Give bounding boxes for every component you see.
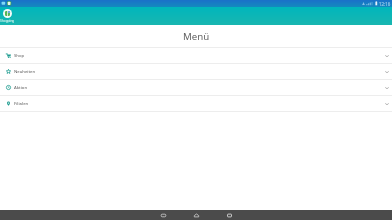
- staticText: Aktion: [14, 85, 28, 91]
- button[interactable]: Home: [180, 210, 213, 220]
- staticText: Filialen: [14, 101, 29, 107]
- button[interactable]: Aktion: [0, 80, 392, 95]
- button[interactable]: Shop: [0, 48, 392, 63]
- staticText: Menü: [183, 30, 210, 43]
- staticText: Shop: [14, 53, 25, 59]
- button[interactable]: Filialen: [0, 96, 392, 111]
- button[interactable]: Back: [147, 210, 180, 220]
- button[interactable]: Neuheiten: [0, 64, 392, 79]
- button[interactable]: Recents: [213, 210, 246, 220]
- staticText: Neuheiten: [14, 69, 36, 75]
- staticText: 12:16: [379, 1, 391, 7]
- button[interactable]: Shopping app: [0, 9, 15, 23]
- staticText: Shopping: [0, 19, 15, 23]
